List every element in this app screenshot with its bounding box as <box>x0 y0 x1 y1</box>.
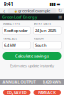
staticText: 24 Jun 2025 <box>35 28 56 33</box>
button[interactable]: South <box>33 41 61 49</box>
button[interactable]: Reload <box>58 8 62 13</box>
staticText: Estimates update instantly <box>10 63 54 68</box>
staticText: ▬ <box>56 2 60 6</box>
button[interactable]: Rooftop solar <box>2 27 30 34</box>
staticText: REGION <box>33 37 43 40</box>
staticText: ▮▮▮ <box>49 2 55 6</box>
staticText: PANEL SIZE <box>2 37 16 40</box>
staticText: INSTALL TYPE <box>2 22 19 25</box>
staticText: GreenLeaf Energy <box>2 14 37 20</box>
staticText: South <box>35 43 47 48</box>
staticText: Calculate savings <box>15 53 49 59</box>
staticText: 🔒 <box>14 9 17 12</box>
staticText: 9:41 <box>3 0 13 8</box>
staticText: 6.4 kW <box>4 43 16 48</box>
staticText: ≡ <box>58 14 62 20</box>
staticText: ENTRY DATE <box>33 22 50 25</box>
button[interactable]: 24 Jun 2025 <box>33 27 61 34</box>
button[interactable]: 🔒 <box>7 8 56 13</box>
staticText: 8,420 kWh <box>42 79 61 85</box>
staticText: ↻ <box>58 8 62 14</box>
staticText: greenleaf.example <box>18 8 50 13</box>
staticText: Rooftop solar <box>4 28 28 33</box>
button[interactable]: Back <box>2 8 6 13</box>
button[interactable]: Calculate savings <box>2 52 61 60</box>
staticText: CO₂ SAVED <box>7 90 27 95</box>
button[interactable]: 6.4 kW <box>2 41 30 49</box>
staticText: ANNUAL OUTPUT <box>2 79 35 85</box>
staticText: PAYBACK <box>38 90 56 95</box>
staticText: ‹ <box>3 6 5 15</box>
